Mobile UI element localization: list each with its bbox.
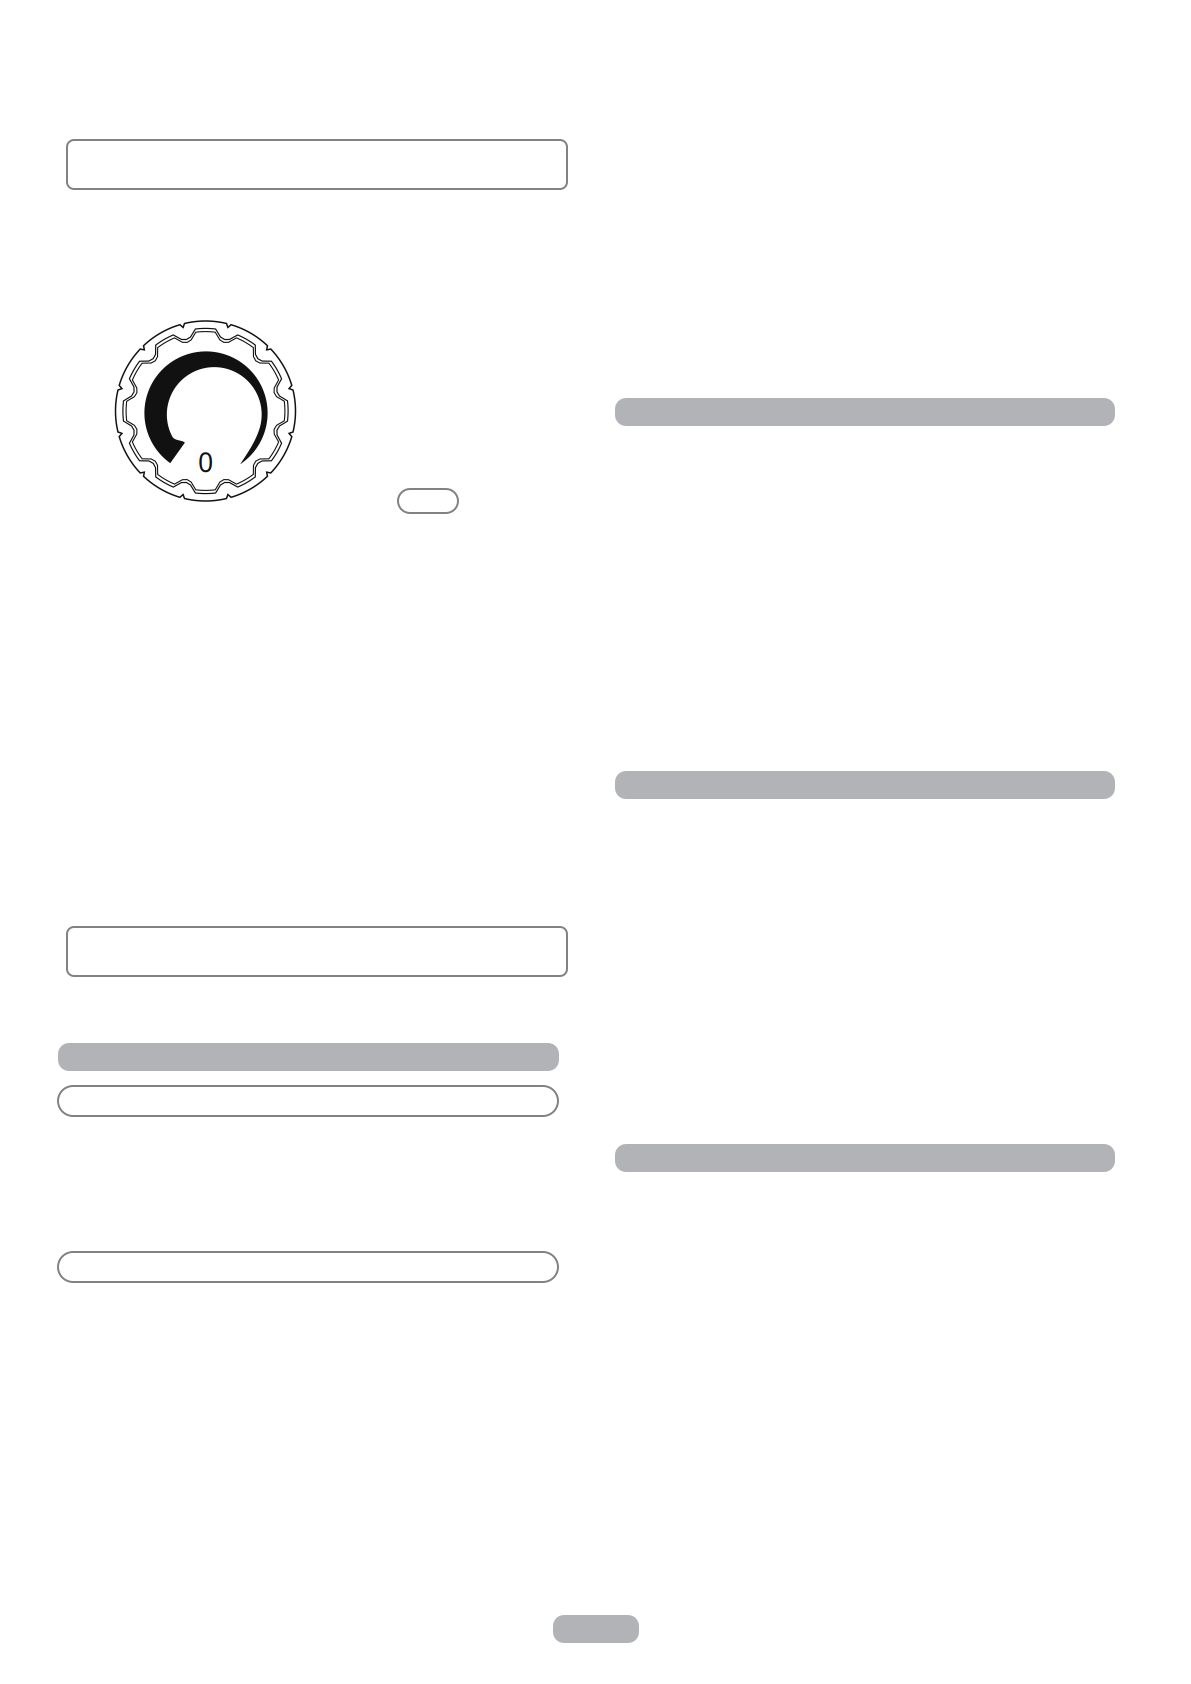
button[interactable]: Field [67,140,567,189]
button[interactable]: Rotary dial, value 0 [105,311,305,511]
button[interactable]: Control [58,1086,558,1116]
button[interactable]: Field [67,927,567,976]
button[interactable]: Small control [398,489,458,513]
button[interactable]: Control [58,1252,558,1282]
staticText: 0 [198,444,213,480]
